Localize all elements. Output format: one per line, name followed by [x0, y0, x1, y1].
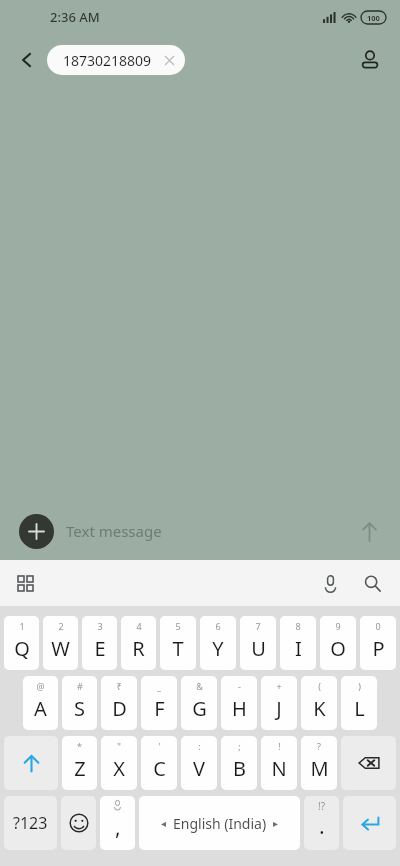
button[interactable]: 4: [121, 616, 156, 670]
staticText: T: [172, 635, 184, 662]
staticText: (: [318, 680, 321, 692]
button[interactable]: ": [101, 736, 137, 790]
staticText: ◂: [161, 818, 167, 830]
staticText: ▸: [273, 818, 279, 830]
button[interactable]: 3: [82, 616, 117, 670]
staticText: *: [77, 740, 82, 752]
staticText: ": [117, 740, 121, 752]
button[interactable]: ): [341, 676, 377, 730]
staticText: 6: [215, 620, 221, 632]
staticText: A: [34, 695, 47, 722]
button[interactable]: ₹: [101, 676, 137, 730]
staticText: .: [319, 812, 325, 841]
staticText: 5: [175, 620, 181, 632]
staticText: 4: [136, 620, 142, 632]
staticText: W: [51, 635, 70, 662]
staticText: R: [132, 635, 145, 662]
staticText: +: [276, 680, 282, 692]
staticText: V: [193, 755, 205, 782]
staticText: X: [113, 755, 125, 782]
button[interactable]: 18730218809: [47, 45, 185, 75]
staticText: D: [112, 695, 127, 722]
staticText: P: [372, 635, 385, 662]
staticText: L: [354, 695, 365, 722]
staticText: I: [295, 635, 302, 662]
button[interactable]: -: [221, 676, 257, 730]
button[interactable]: ?: [301, 736, 337, 790]
button[interactable]: ◂: [139, 796, 300, 850]
staticText: J: [276, 695, 282, 722]
staticText: K: [313, 695, 326, 722]
button[interactable]: Period: [304, 796, 339, 850]
button[interactable]: Send: [350, 512, 388, 550]
staticText: ?123: [13, 812, 48, 834]
button[interactable]: ;: [221, 736, 257, 790]
staticText: Y: [212, 635, 224, 662]
staticText: !: [278, 740, 281, 752]
button[interactable]: &: [181, 676, 217, 730]
button[interactable]: 1: [4, 616, 39, 670]
button[interactable]: Contact details: [352, 42, 388, 78]
staticText: ₹: [116, 680, 122, 692]
staticText: _: [157, 680, 161, 692]
button[interactable]: Comma: [100, 796, 135, 850]
staticText: S: [74, 695, 85, 722]
staticText: &: [196, 680, 203, 692]
button[interactable]: ?123: [4, 796, 57, 850]
button[interactable]: 7: [240, 616, 276, 670]
button[interactable]: ': [141, 736, 177, 790]
staticText: #: [77, 680, 83, 692]
button[interactable]: 8: [280, 616, 316, 670]
staticText: @: [36, 680, 45, 692]
staticText: F: [154, 695, 165, 722]
button[interactable]: Back: [10, 43, 44, 77]
staticText: :: [198, 740, 201, 752]
button[interactable]: 6: [200, 616, 236, 670]
button[interactable]: Text message: [66, 521, 320, 541]
button[interactable]: Keyboard menu: [8, 566, 42, 600]
staticText: U: [251, 635, 266, 662]
staticText: O: [330, 635, 346, 662]
button[interactable]: +: [261, 676, 297, 730]
button[interactable]: Remove recipient: [161, 52, 177, 68]
button[interactable]: *: [62, 736, 97, 790]
button[interactable]: 9: [320, 616, 356, 670]
button[interactable]: Emoji: [61, 796, 96, 850]
staticText: Q: [14, 635, 30, 662]
staticText: ,: [115, 813, 121, 842]
button[interactable]: 5: [160, 616, 196, 670]
staticText: N: [271, 755, 287, 782]
staticText: 8: [295, 620, 301, 632]
button[interactable]: :: [181, 736, 217, 790]
button[interactable]: Enter: [343, 796, 396, 850]
button[interactable]: 2: [43, 616, 78, 670]
staticText: 2: [58, 620, 64, 632]
button[interactable]: 0: [360, 616, 396, 670]
button[interactable]: !: [261, 736, 297, 790]
staticText: M: [310, 755, 329, 782]
staticText: B: [233, 755, 246, 782]
staticText: 1: [19, 620, 25, 632]
staticText: H: [232, 695, 247, 722]
staticText: E: [94, 635, 106, 662]
button[interactable]: Backspace: [341, 736, 396, 790]
staticText: 2:36 AM: [50, 8, 100, 26]
staticText: 3: [97, 620, 103, 632]
button[interactable]: Shift: [4, 736, 58, 790]
button[interactable]: @: [23, 676, 58, 730]
staticText: Z: [74, 755, 86, 782]
button[interactable]: #: [62, 676, 97, 730]
staticText: 100: [367, 13, 380, 23]
staticText: ': [158, 740, 161, 752]
staticText: 0: [375, 620, 381, 632]
staticText: ?: [317, 740, 321, 752]
staticText: -: [238, 680, 241, 692]
staticText: G: [192, 695, 207, 722]
button[interactable]: Add attachment: [19, 514, 54, 549]
staticText: 9: [335, 620, 341, 632]
button[interactable]: Voice input: [312, 565, 348, 601]
button[interactable]: _: [141, 676, 177, 730]
staticText: 18730218809: [63, 51, 152, 70]
button[interactable]: Search: [354, 565, 390, 601]
button[interactable]: (: [301, 676, 337, 730]
